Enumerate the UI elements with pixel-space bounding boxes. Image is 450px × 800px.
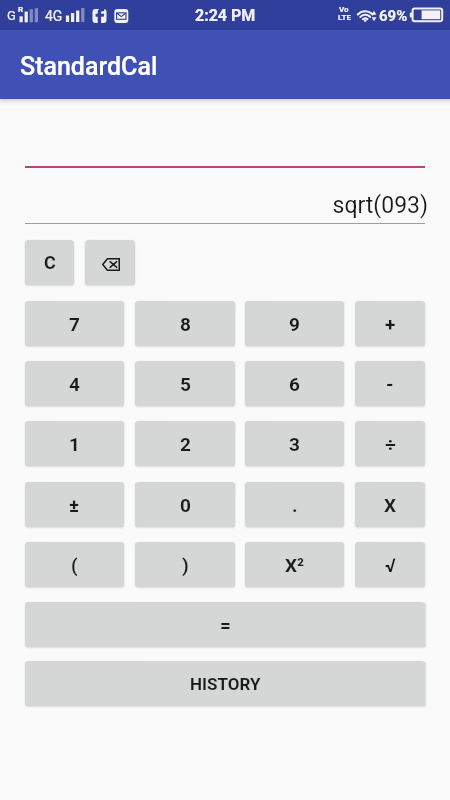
- staticText: 8: [180, 313, 191, 335]
- staticText: 2:24 PM: [195, 6, 256, 25]
- staticText: HISTORY: [190, 674, 261, 694]
- staticText: 1: [69, 433, 80, 455]
- button[interactable]: 0: [135, 482, 235, 527]
- staticText: 0: [180, 494, 191, 516]
- staticText: ): [182, 554, 189, 576]
- staticText: √: [385, 554, 396, 576]
- staticText: Vo: [339, 5, 349, 14]
- button[interactable]: 4: [25, 361, 124, 406]
- staticText: G: [7, 8, 16, 23]
- staticText: 6: [289, 373, 300, 395]
- button[interactable]: X: [355, 482, 425, 527]
- staticText: =: [220, 614, 231, 636]
- button[interactable]: .: [245, 482, 344, 527]
- staticText: +: [385, 313, 396, 335]
- button[interactable]: 6: [245, 361, 344, 406]
- button[interactable]: 1: [25, 421, 124, 466]
- staticText: 69%: [379, 7, 408, 25]
- staticText: 3: [289, 433, 300, 455]
- button[interactable]: 7: [25, 301, 124, 346]
- button[interactable]: ±: [25, 482, 124, 527]
- button[interactable]: 8: [135, 301, 235, 346]
- staticText: ±: [69, 494, 80, 516]
- button[interactable]: Backspace: [85, 240, 135, 285]
- button[interactable]: HISTORY: [25, 661, 425, 706]
- button[interactable]: 5: [135, 361, 235, 406]
- button[interactable]: =: [25, 602, 425, 647]
- staticText: -: [386, 373, 394, 395]
- staticText: StandardCal: [20, 52, 158, 81]
- staticText: 2: [180, 433, 191, 455]
- staticText: sqrt(093): [25, 192, 428, 219]
- staticText: 4G: [45, 8, 63, 24]
- staticText: ÷: [385, 433, 396, 455]
- staticText: 7: [69, 313, 80, 335]
- button[interactable]: 9: [245, 301, 344, 346]
- button[interactable]: +: [355, 301, 425, 346]
- staticText: LTE: [338, 13, 351, 22]
- staticText: X²: [285, 554, 305, 576]
- staticText: C: [44, 252, 56, 273]
- button[interactable]: 2: [135, 421, 235, 466]
- button[interactable]: -: [355, 361, 425, 406]
- staticText: .: [292, 494, 298, 516]
- staticText: 4: [69, 373, 80, 395]
- button[interactable]: ): [135, 542, 235, 587]
- staticText: X: [384, 494, 397, 516]
- staticText: 5: [180, 373, 191, 395]
- button[interactable]: 3: [245, 421, 344, 466]
- button[interactable]: X²: [245, 542, 344, 587]
- button[interactable]: ÷: [355, 421, 425, 466]
- staticText: 9: [289, 313, 300, 335]
- button[interactable]: (: [25, 542, 124, 587]
- button[interactable]: √: [355, 542, 425, 587]
- staticText: (: [71, 554, 78, 576]
- staticText: R: [18, 5, 24, 14]
- button[interactable]: C: [25, 240, 74, 285]
